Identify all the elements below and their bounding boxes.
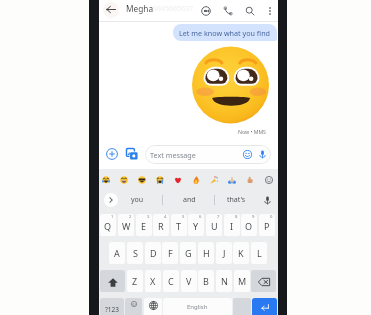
button[interactable]: 7 (206, 214, 222, 236)
button[interactable]: Search (241, 0, 258, 22)
staticText: U (211, 220, 218, 232)
button[interactable]: C (163, 270, 179, 292)
button[interactable]: N (216, 270, 232, 292)
button[interactable]: Emoji 5 (187, 170, 205, 189)
staticText: H (203, 247, 210, 259)
staticText: Let me know what you find (179, 28, 271, 38)
button[interactable]: Emoji 0 (97, 170, 115, 189)
button[interactable]: L (251, 242, 267, 264)
button[interactable]: Emoji 6 (205, 170, 223, 189)
button[interactable]: and (167, 190, 211, 210)
button[interactable]: Change keyboard (144, 298, 162, 315)
staticText: S (133, 247, 138, 259)
button[interactable]: Voice input (258, 190, 277, 210)
staticText: 8 (235, 214, 238, 220)
staticText: A (114, 247, 120, 259)
staticText: 9845665637 (153, 4, 194, 14)
staticText: O (245, 220, 253, 232)
button[interactable]: Emoji 3 (151, 170, 169, 189)
button[interactable]: Enter (252, 298, 277, 315)
button[interactable]: 2 (118, 214, 134, 236)
staticText: 7 (217, 214, 220, 220)
button[interactable]: 6 (188, 214, 204, 236)
button[interactable]: 5 (171, 214, 187, 236)
button[interactable]: Emoji (125, 298, 142, 315)
button[interactable]: 1 (100, 214, 116, 236)
staticText: 9 (252, 214, 255, 220)
button[interactable]: G (180, 242, 196, 264)
staticText: Y (193, 220, 199, 232)
staticText: I (230, 220, 234, 232)
button[interactable]: A (109, 242, 125, 264)
button[interactable]: Emoji 4 (169, 170, 187, 189)
staticText: M (238, 275, 247, 287)
button[interactable]: Z (127, 270, 143, 292)
button[interactable]: Let me know what you find (173, 24, 277, 41)
button[interactable]: you (115, 190, 159, 210)
staticText: 0 (270, 214, 273, 220)
button[interactable]: F (162, 242, 178, 264)
staticText: 1 (111, 214, 114, 220)
button[interactable]: Emoji 9 (260, 170, 278, 189)
staticText: and (183, 195, 196, 205)
staticText: 3 (147, 214, 150, 220)
staticText: J (223, 247, 226, 259)
staticText: Megha (126, 3, 154, 14)
button[interactable]: Video call (197, 0, 214, 22)
staticText: N (221, 275, 228, 287)
staticText: C (168, 275, 174, 287)
button[interactable]: Emoji 2 (133, 170, 151, 189)
button[interactable]: More suggestions (104, 193, 118, 207)
button[interactable]: Call (219, 0, 236, 22)
button[interactable]: K (233, 242, 249, 264)
staticText: Text message (150, 150, 196, 160)
button[interactable]: 3 (136, 214, 152, 236)
button[interactable]: S (127, 242, 143, 264)
button[interactable]: Attach (103, 145, 120, 162)
staticText: L (257, 247, 262, 259)
button[interactable]: that's (214, 190, 258, 210)
button[interactable]: B (198, 270, 214, 292)
button[interactable]: Text message (145, 145, 271, 164)
staticText: 4 (164, 214, 167, 220)
button[interactable]: Symbols (100, 298, 124, 315)
button[interactable]: X (145, 270, 161, 292)
button[interactable]: 4 (153, 214, 169, 236)
staticText: F (168, 247, 173, 259)
button[interactable]: 0 (259, 214, 275, 236)
staticText: 5 (182, 214, 185, 220)
button[interactable]: Emoji 1 (115, 170, 133, 189)
staticText: ?123 (105, 305, 119, 314)
button[interactable]: J (216, 242, 232, 264)
staticText: Z (132, 275, 138, 287)
staticText: D (150, 247, 157, 259)
button[interactable]: H (198, 242, 214, 264)
button[interactable]: D (145, 242, 161, 264)
staticText: X (150, 275, 156, 287)
button[interactable]: Back (101, 0, 120, 19)
staticText: V (186, 275, 192, 287)
button[interactable]: More options (261, 0, 278, 22)
button[interactable]: Space (163, 298, 232, 315)
staticText: R (158, 220, 164, 232)
button[interactable]: 8 (224, 214, 240, 236)
button[interactable]: Emoji 8 (241, 170, 259, 189)
button[interactable]: Shift (100, 270, 125, 292)
staticText: G (185, 247, 192, 259)
button[interactable]: M (234, 270, 250, 292)
staticText: E (141, 220, 147, 232)
button[interactable]: Gallery (123, 145, 140, 162)
staticText: W (122, 220, 131, 232)
staticText: English (187, 303, 208, 311)
staticText: 2 (129, 214, 132, 220)
staticText: you (131, 195, 144, 205)
staticText: that's (227, 195, 246, 205)
button[interactable]: Backspace (251, 270, 276, 292)
staticText: K (238, 247, 244, 259)
button[interactable]: Emoji 7 (223, 170, 241, 189)
button[interactable]: 9 (241, 214, 257, 236)
button[interactable]: V (181, 270, 197, 292)
